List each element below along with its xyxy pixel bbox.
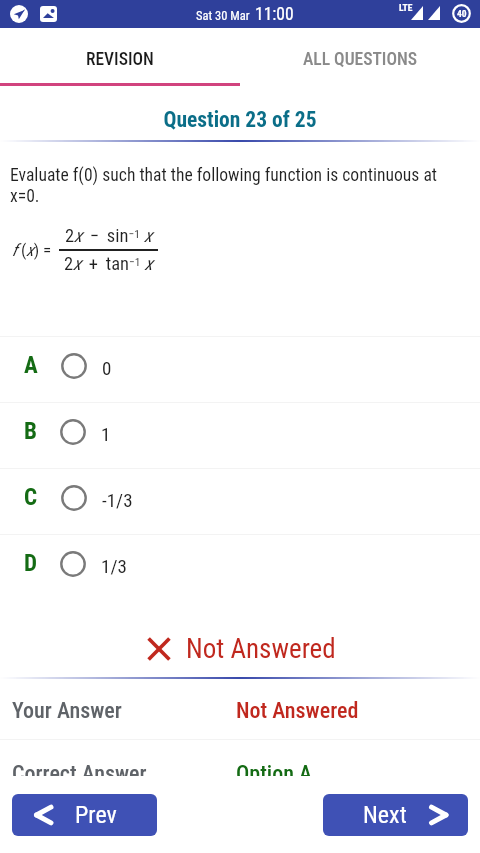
staticText: A [24,352,38,379]
button[interactable]: ALL QUESTIONS [240,36,480,83]
staticText: Not Answered [186,633,336,665]
button[interactable]: D [0,535,480,600]
staticText: C [24,484,38,511]
button[interactable]: C [0,469,480,534]
staticText: 0 [102,357,112,379]
staticText: Prev [75,801,117,829]
staticText: f (x) = [12,240,52,260]
staticText: Correct Answer [12,761,236,776]
staticText: 11:00 [255,4,294,25]
staticText: B [24,418,37,445]
button[interactable]: B [0,403,480,468]
staticText: 2x − sin−1 x [65,225,153,247]
staticText: 2x + tan−1 x [64,253,153,275]
staticText: 1/3 [101,555,127,577]
staticText: REVISION [86,49,154,70]
staticText: -1/3 [102,489,133,511]
staticText: D [24,550,37,577]
staticText: Your Answer [12,698,236,724]
staticText: ALL QUESTIONS [303,49,418,70]
button[interactable]: A [0,337,480,402]
staticText: 1 [101,423,111,445]
staticText: Evaluate f(0) such that the following fu… [10,165,440,207]
staticText: Not Answered [236,698,359,724]
staticText: 40 [457,8,467,19]
staticText: LTE [399,2,413,13]
staticText: Option A [236,761,313,776]
staticText: Sat 30 Mar [196,8,250,23]
button[interactable]: REVISION [0,36,240,83]
button[interactable]: Next [323,794,468,836]
staticText: Question 23 of 25 [0,107,480,132]
button[interactable]: Prev [12,794,157,836]
staticText: Next [363,801,407,829]
